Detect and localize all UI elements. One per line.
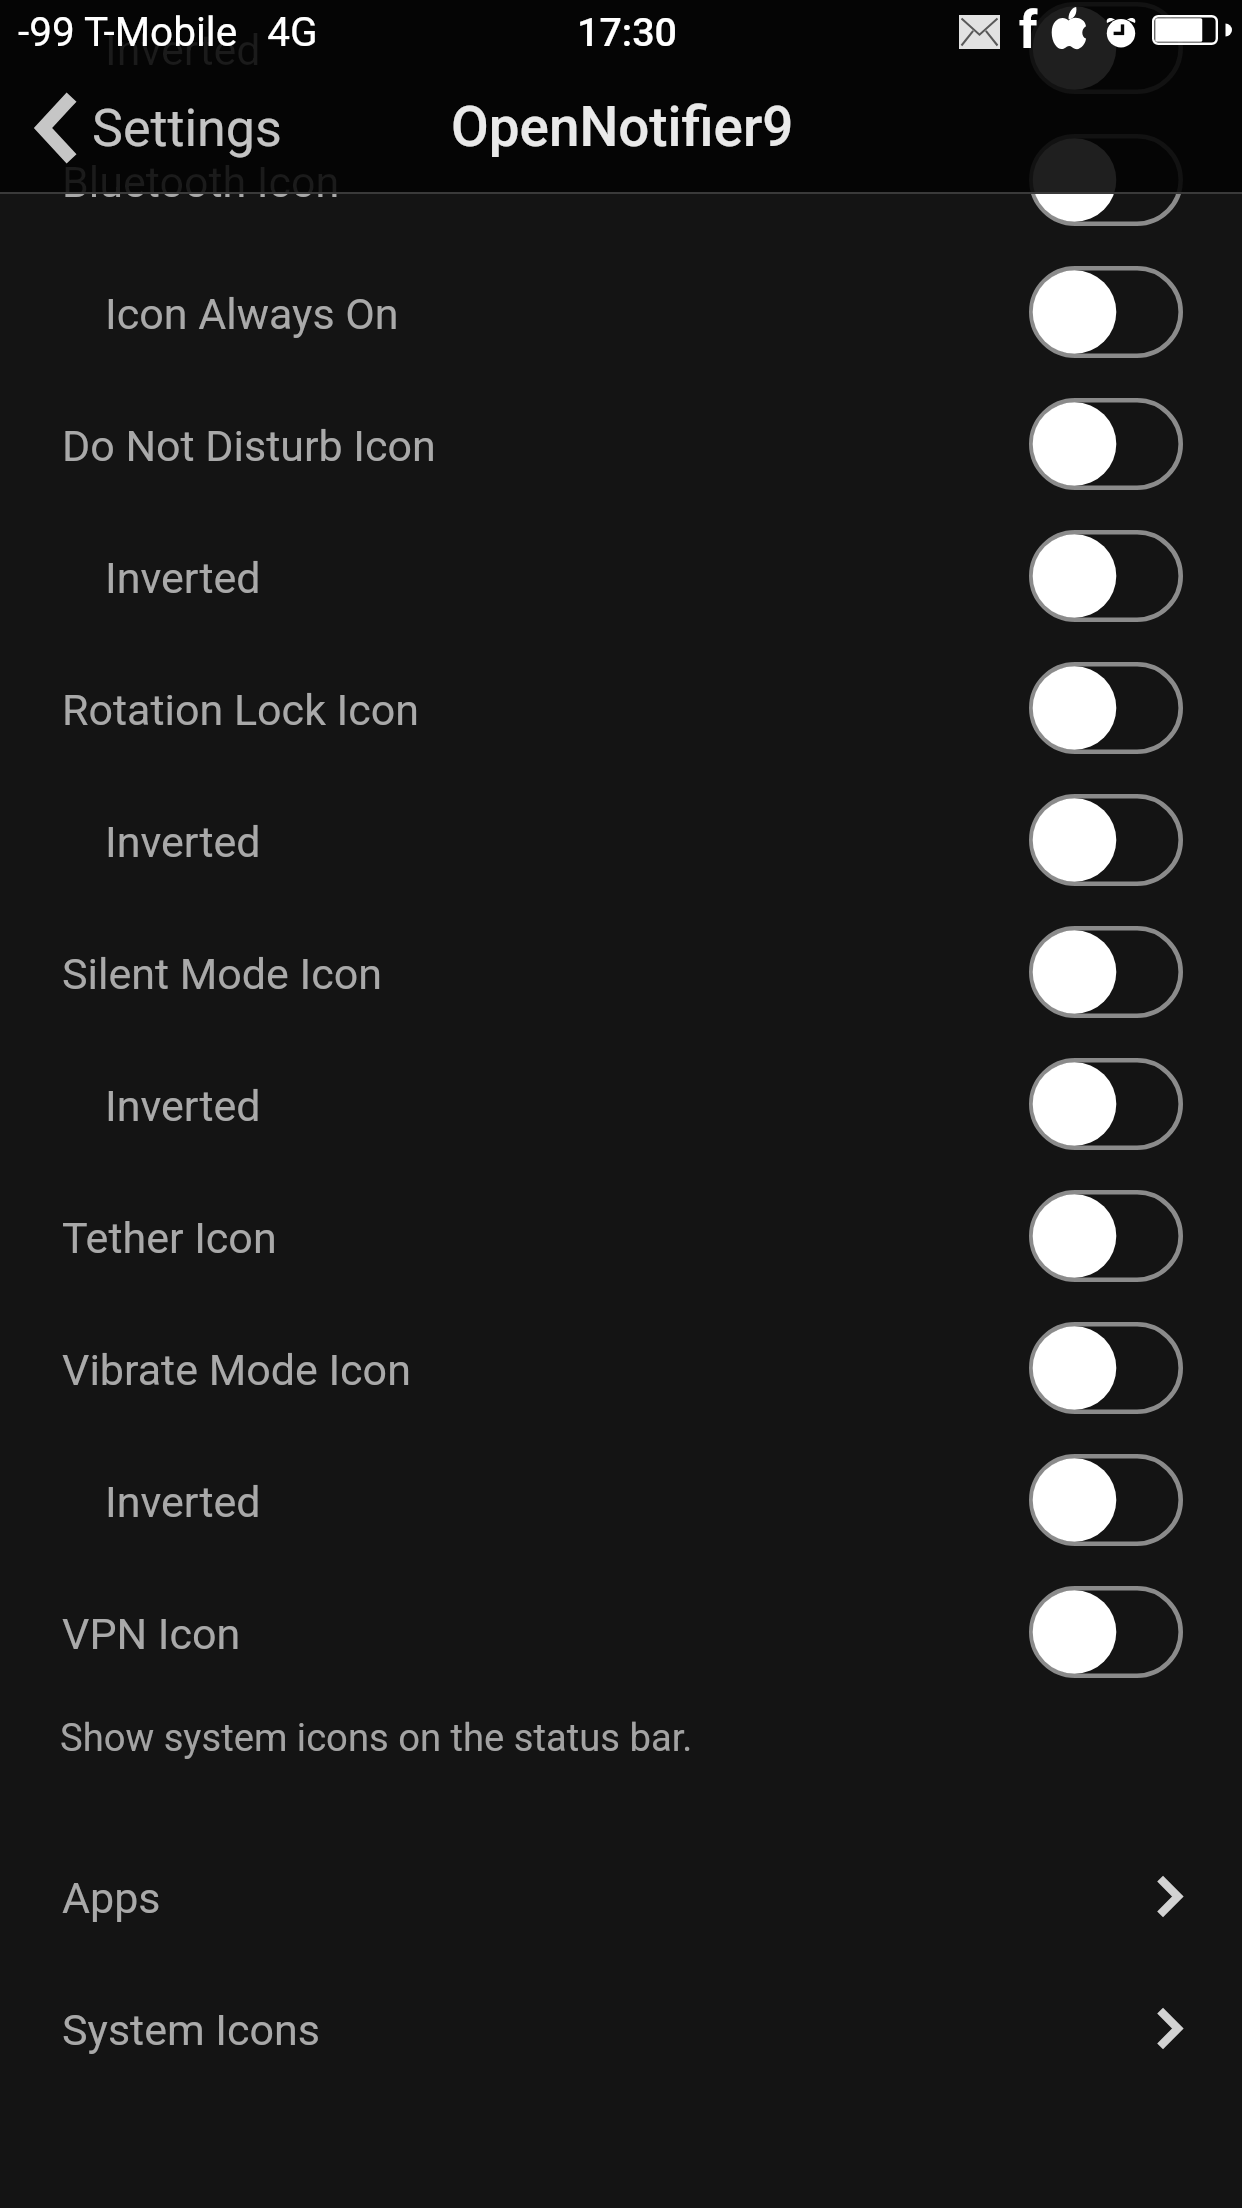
button[interactable]: Back to Settings bbox=[36, 92, 304, 164]
button[interactable]: Toggle bbox=[1029, 1190, 1183, 1282]
button[interactable]: Toggle bbox=[1029, 266, 1183, 358]
staticText: Do Not Disturb Icon bbox=[62, 421, 436, 471]
staticText: Inverted bbox=[105, 817, 261, 867]
staticText: Show system icons on the status bar. bbox=[60, 1716, 693, 1761]
staticText: Rotation Lock Icon bbox=[62, 685, 420, 735]
button[interactable]: Inverted bbox=[0, 1038, 1242, 1170]
staticText: Silent Mode Icon bbox=[62, 949, 382, 999]
button[interactable]: VPN Icon bbox=[0, 1566, 1242, 1698]
staticText: Tether Icon bbox=[62, 1213, 277, 1263]
button[interactable]: Tether Icon bbox=[0, 1170, 1242, 1302]
staticText: Inverted bbox=[105, 25, 261, 75]
button[interactable]: Toggle bbox=[1029, 1586, 1183, 1678]
button[interactable]: Icon Always On bbox=[0, 246, 1242, 378]
button[interactable]: Inverted bbox=[0, 774, 1242, 906]
button[interactable]: Do Not Disturb Icon bbox=[0, 378, 1242, 510]
button[interactable]: Inverted bbox=[0, 1434, 1242, 1566]
button[interactable]: Toggle bbox=[1029, 926, 1183, 1018]
staticText: Vibrate Mode Icon bbox=[62, 1345, 411, 1395]
button[interactable]: Toggle bbox=[1029, 662, 1183, 754]
button[interactable]: Vibrate Mode Icon bbox=[0, 1302, 1242, 1434]
button[interactable]: Bluetooth Icon bbox=[0, 114, 1242, 246]
button[interactable]: Toggle bbox=[1029, 794, 1183, 886]
button[interactable]: Toggle bbox=[1029, 134, 1183, 226]
button[interactable]: Toggle bbox=[1029, 530, 1183, 622]
staticText: Inverted bbox=[105, 1477, 261, 1527]
staticText: -99 T-Mobile 4G bbox=[18, 8, 318, 55]
staticText: VPN Icon bbox=[62, 1609, 241, 1659]
staticText: Apps bbox=[62, 1873, 161, 1923]
button[interactable]: Toggle bbox=[1029, 2, 1183, 94]
button[interactable]: System Icons bbox=[0, 1962, 1242, 2094]
staticText: OpenNotifier9 bbox=[451, 95, 794, 159]
button[interactable]: Rotation Lock Icon bbox=[0, 642, 1242, 774]
button[interactable]: Apps bbox=[0, 1830, 1242, 1962]
button[interactable]: Toggle bbox=[1029, 1058, 1183, 1150]
button[interactable]: Inverted bbox=[0, 0, 1242, 114]
staticText: f bbox=[1019, 1, 1038, 57]
staticText: Inverted bbox=[105, 25, 261, 75]
staticText: Inverted bbox=[105, 1081, 261, 1131]
button[interactable]: Toggle bbox=[1029, 398, 1183, 490]
button[interactable]: Silent Mode Icon bbox=[0, 906, 1242, 1038]
staticText: Icon Always On bbox=[105, 289, 399, 339]
button[interactable]: Toggle bbox=[1029, 1322, 1183, 1414]
staticText: Settings bbox=[92, 98, 282, 159]
staticText: System Icons bbox=[62, 2005, 320, 2055]
button[interactable]: Inverted bbox=[0, 510, 1242, 642]
staticText: Bluetooth Icon bbox=[62, 157, 340, 207]
staticText: Inverted bbox=[105, 553, 261, 603]
staticText: 17:30 bbox=[6, 9, 1242, 55]
button[interactable]: Toggle bbox=[1029, 1454, 1183, 1546]
staticText: Bluetooth Icon bbox=[62, 157, 340, 194]
